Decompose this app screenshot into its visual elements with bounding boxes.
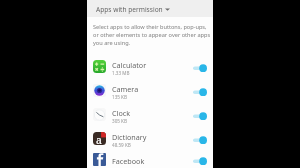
staticText: or other elements to appear over other a… [93,31,211,39]
button[interactable]: Apps with permission [87,0,213,17]
button[interactable]: a [87,126,213,150]
staticText: Calculator [112,60,147,70]
staticText: 305 KB [112,118,127,124]
button[interactable]: Toggle permission [193,60,207,72]
staticText: 48.59 KB [112,142,131,148]
staticText: Facebook [112,156,145,166]
button[interactable]: Facebook [87,150,213,168]
button[interactable]: Camera [87,78,213,102]
staticText: Dictionary [112,132,147,142]
staticText: 135 KB [112,94,127,100]
staticText: Select apps to allow their buttons, pop-… [93,23,207,31]
button[interactable]: Clock [87,102,213,126]
staticText: Camera [112,84,139,94]
staticText: 1.33 MB [112,70,130,76]
staticText: Apps with permission [96,5,163,14]
staticText: you are using. [93,39,131,47]
button[interactable]: Toggle permission [193,108,207,120]
button[interactable]: Calculator [87,54,213,78]
staticText: a [96,133,102,145]
button[interactable]: Toggle permission [193,84,207,96]
button[interactable]: Toggle permission [193,132,207,144]
staticText: Clock [112,108,131,118]
button[interactable]: Toggle permission [193,153,207,165]
